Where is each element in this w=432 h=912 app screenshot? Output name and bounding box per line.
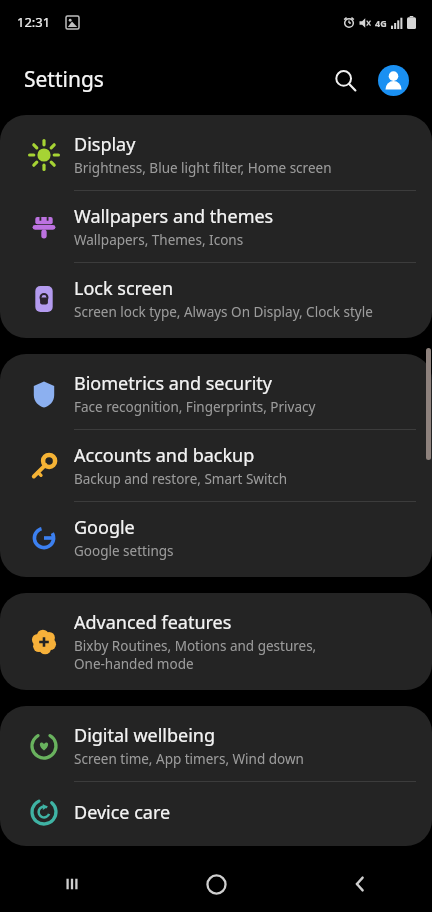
button[interactable]: Biometrics and security bbox=[0, 358, 432, 429]
staticText: Advanced features bbox=[74, 610, 232, 635]
staticText: Display bbox=[74, 132, 136, 157]
button[interactable]: Advanced features bbox=[0, 597, 432, 686]
staticText: Wallpapers, Themes, Icons bbox=[74, 231, 244, 249]
staticText: Digital wellbeing bbox=[74, 723, 216, 748]
button[interactable]: Wallpapers and themes bbox=[0, 191, 432, 262]
button[interactable]: Accounts and backup bbox=[0, 430, 432, 501]
staticText: Google bbox=[74, 515, 135, 540]
staticText: Brightness, Blue light filter, Home scre… bbox=[74, 159, 332, 177]
staticText: 12:31 bbox=[17, 13, 51, 31]
button[interactable]: Account bbox=[370, 57, 416, 103]
staticText: Screen lock type, Always On Display, Clo… bbox=[74, 303, 373, 321]
staticText: Backup and restore, Smart Switch bbox=[74, 470, 288, 488]
button[interactable]: Recent apps bbox=[0, 856, 144, 912]
button[interactable]: Home bbox=[144, 856, 288, 912]
staticText: Screen time, App timers, Wind down bbox=[74, 750, 304, 768]
staticText: Accounts and backup bbox=[74, 443, 255, 468]
staticText: Lock screen bbox=[74, 276, 174, 301]
button[interactable]: Device care bbox=[0, 782, 432, 842]
button[interactable]: Digital wellbeing bbox=[0, 710, 432, 781]
staticText: Settings bbox=[24, 65, 104, 94]
button[interactable]: Search bbox=[322, 57, 368, 103]
button[interactable]: Display bbox=[0, 119, 432, 190]
button[interactable]: Google bbox=[0, 502, 432, 573]
button[interactable]: Lock screen bbox=[0, 263, 432, 334]
staticText: Bixby Routines, Motions and gestures, On… bbox=[74, 637, 317, 673]
staticText: Biometrics and security bbox=[74, 371, 272, 396]
staticText: Face recognition, Fingerprints, Privacy bbox=[74, 398, 316, 416]
staticText: 4G bbox=[375, 17, 387, 29]
staticText: Device care bbox=[74, 800, 171, 825]
staticText: Google settings bbox=[74, 542, 174, 560]
button[interactable]: Back bbox=[288, 856, 432, 912]
staticText: Wallpapers and themes bbox=[74, 204, 274, 229]
